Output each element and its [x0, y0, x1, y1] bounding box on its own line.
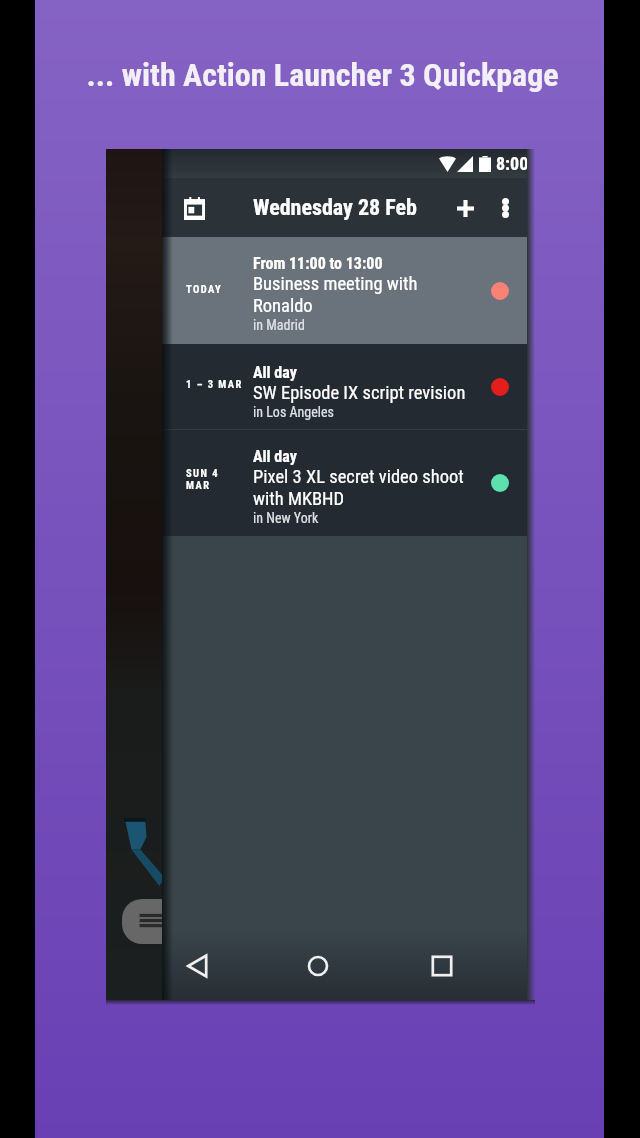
staticText: 1 – 3 MAR [186, 378, 243, 390]
staticText: Pixel 3 XL secret video shoot [253, 466, 464, 488]
staticText: 8:00 [496, 153, 529, 174]
button[interactable]: Recents [420, 944, 463, 987]
staticText: SW Episode IX script revision [253, 382, 466, 404]
staticText: with MKBHD [253, 488, 345, 510]
button[interactable]: Back [175, 944, 218, 987]
staticText: in Los Angeles [253, 404, 334, 420]
button[interactable]: TODAY [162, 237, 527, 344]
button[interactable]: Calendar [171, 185, 217, 231]
staticText: TODAY [186, 283, 223, 295]
staticText: ... with Action Launcher 3 Quickpage [86, 56, 559, 94]
staticText: Wednesday 28 Feb [253, 195, 417, 221]
button[interactable]: Home [296, 944, 339, 987]
staticText: All day [253, 447, 297, 466]
staticText: Ronaldo [253, 295, 313, 317]
staticText: MAR [186, 479, 211, 491]
button[interactable]: Add event [443, 186, 487, 230]
staticText: From 11:00 to 13:00 [253, 254, 383, 273]
staticText: Business meeting with [253, 273, 418, 295]
button[interactable]: Quickpage handle [122, 899, 162, 944]
button[interactable]: SUN 4 [162, 430, 527, 536]
staticText: SUN 4 [186, 467, 220, 479]
staticText: in New York [253, 510, 319, 526]
staticText: All day [253, 363, 297, 382]
button[interactable]: More options [483, 186, 527, 230]
button[interactable]: 1 – 3 MAR [162, 344, 527, 429]
staticText: in Madrid [253, 317, 305, 333]
